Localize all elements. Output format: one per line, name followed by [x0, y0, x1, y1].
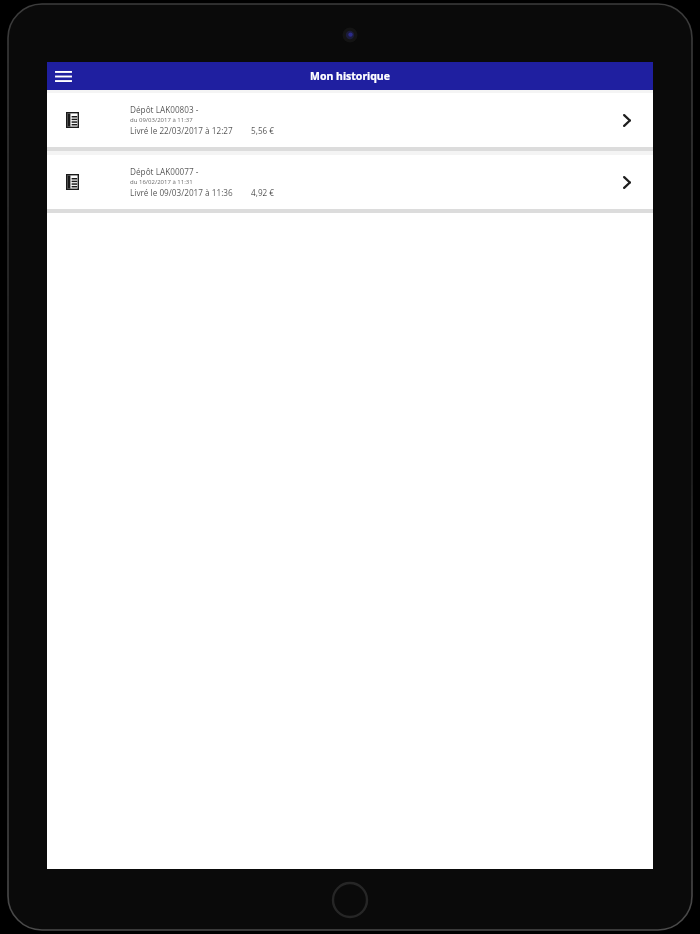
other: Voir le détail: [617, 172, 637, 192]
staticText: Dépôt LAK00803 -: [130, 104, 199, 115]
staticText: Livré le 22/03/2017 à 12:27: [130, 125, 233, 136]
staticText: 5,56 €: [251, 125, 275, 136]
staticText: du 09/03/2017 à 11:37: [130, 116, 193, 124]
staticText: Livré le 09/03/2017 à 11:36: [130, 187, 233, 198]
button[interactable]: Open navigation menu: [52, 65, 74, 87]
staticText: du 16/02/2017 à 11:31: [130, 178, 193, 186]
staticText: 4,92 €: [251, 187, 275, 198]
button[interactable]: Dépôt LAK00803 -: [47, 93, 653, 147]
staticText: Mon historique: [47, 69, 653, 83]
other: Voir le détail: [617, 110, 637, 130]
staticText: Dépôt LAK00077 -: [130, 166, 199, 177]
button[interactable]: Dépôt LAK00077 -: [47, 155, 653, 209]
